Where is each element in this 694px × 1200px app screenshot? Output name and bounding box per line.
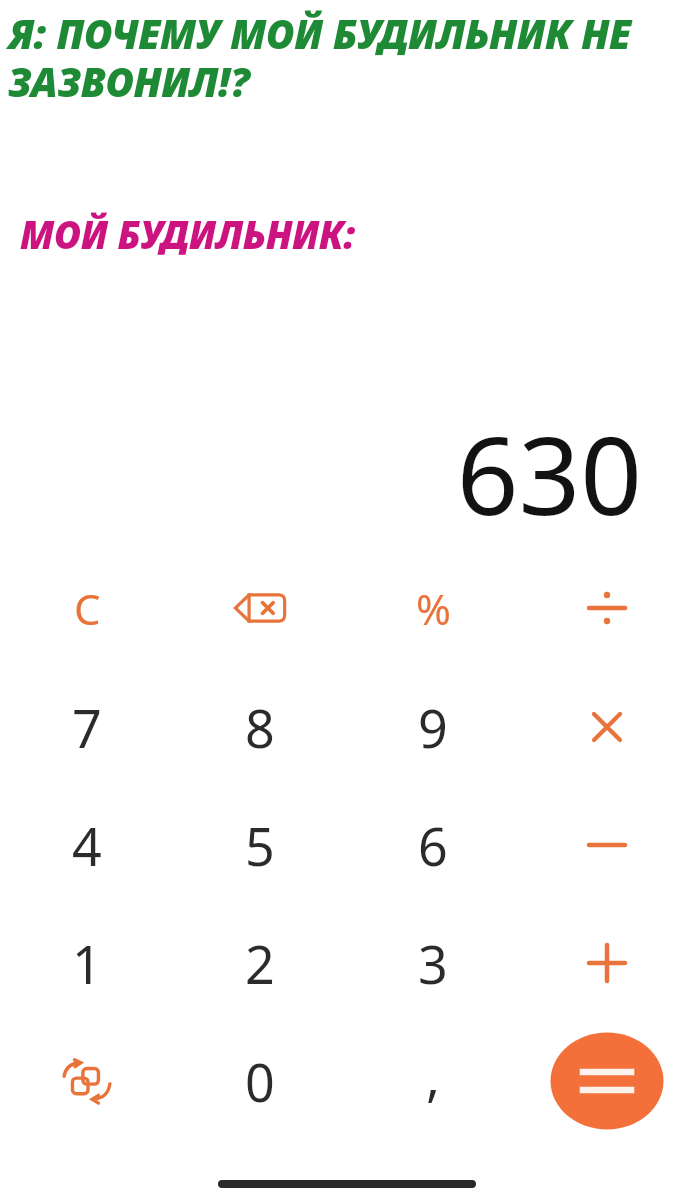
staticText: 6 (418, 810, 448, 881)
staticText: МОЙ БУДИЛЬНИК: (20, 208, 670, 260)
staticText: 1 (72, 928, 102, 999)
button[interactable]: Minus (532, 790, 682, 900)
button[interactable]: 2 (185, 908, 335, 1018)
staticText: 4 (72, 810, 102, 881)
button[interactable]: 3 (358, 908, 508, 1018)
button[interactable]: 4 (12, 790, 162, 900)
staticText: 9 (418, 692, 448, 763)
staticText: % (416, 580, 451, 637)
staticText: 0 (245, 1046, 275, 1117)
button[interactable]: Backspace (185, 553, 335, 663)
staticText: , (426, 1040, 440, 1111)
staticText: 5 (245, 810, 275, 881)
button[interactable]: C (12, 553, 162, 663)
button[interactable]: 9 (358, 672, 508, 782)
staticText: C (74, 580, 101, 637)
button[interactable]: 7 (12, 672, 162, 782)
button[interactable]: Divide (532, 553, 682, 663)
button[interactable]: 6 (358, 790, 508, 900)
staticText: 7 (72, 692, 102, 763)
staticText: 2 (245, 928, 275, 999)
staticText: 3 (418, 928, 448, 999)
button[interactable]: 0 (185, 1026, 335, 1136)
button[interactable]: 1 (12, 908, 162, 1018)
button[interactable]: Multiply (532, 672, 682, 782)
button[interactable]: % (358, 553, 508, 663)
button[interactable]: Unit converter (12, 1026, 162, 1136)
button[interactable]: Equals (532, 1021, 682, 1141)
staticText: 630 (0, 400, 642, 547)
button[interactable]: 5 (185, 790, 335, 900)
button[interactable]: 8 (185, 672, 335, 782)
staticText: 8 (245, 692, 275, 763)
button[interactable]: , (358, 1026, 508, 1136)
staticText: Я: ПОЧЕМУ МОЙ БУДИЛЬНИК НЕ ЗАЗВОНИЛ!? (8, 6, 694, 109)
button[interactable]: Plus (532, 908, 682, 1018)
